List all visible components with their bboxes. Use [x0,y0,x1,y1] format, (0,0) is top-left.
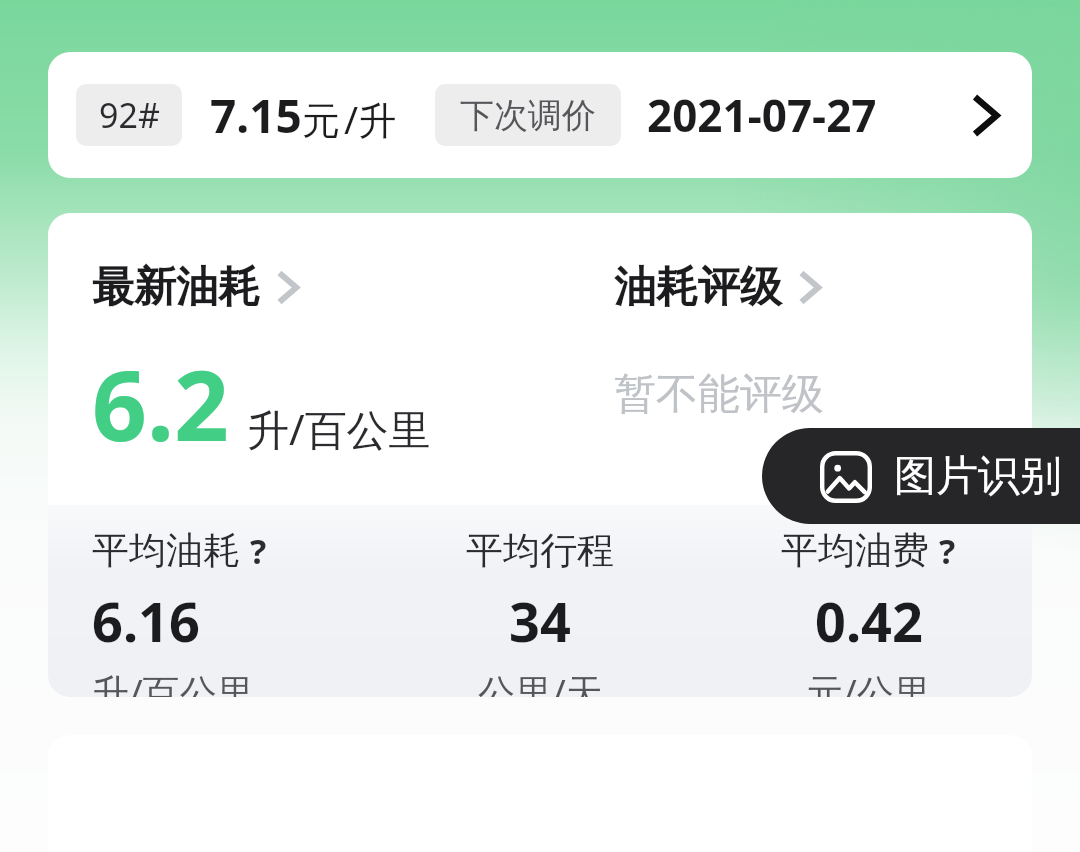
staticText: 平均油费 [781,527,929,574]
staticText: 油耗评级 [614,261,782,314]
staticText: 元/公里 [806,666,931,697]
button[interactable]: 平均油耗 [92,527,267,697]
button[interactable]: 平均行程 [466,527,614,697]
staticText: 最新油耗 [92,261,260,314]
staticText: 图片识别 [894,450,1062,503]
staticText: 公里/天 [478,666,603,697]
staticText: ? [250,528,267,574]
staticText: 2021-07-27 [647,85,877,145]
staticText: 元 [302,97,340,145]
button[interactable]: 平均油费 [781,527,956,697]
button[interactable]: 油耗评级 [614,261,836,429]
button[interactable]: 92# [48,52,1032,178]
staticText: /升 [344,93,397,145]
staticText: 下次调价 [460,94,596,137]
staticText: 6.16 [92,584,200,658]
staticText: 平均油耗 [92,527,240,574]
staticText: 7.15 [210,84,302,147]
staticText: 平均行程 [466,527,614,574]
staticText: 升/百公里 [247,400,431,457]
staticText: ? [939,528,956,574]
staticText: 升/百公里 [92,666,254,697]
staticText: 92# [99,92,160,138]
staticText: 6.2 [92,338,229,469]
staticText: 0.42 [815,584,923,658]
staticText: 34 [509,584,571,658]
other: 查看油价详情 [952,80,1022,150]
staticText: 暂不能评级 [614,368,824,421]
button[interactable]: 图片识别 [762,428,1080,524]
button[interactable]: 最新油耗 [92,261,443,477]
